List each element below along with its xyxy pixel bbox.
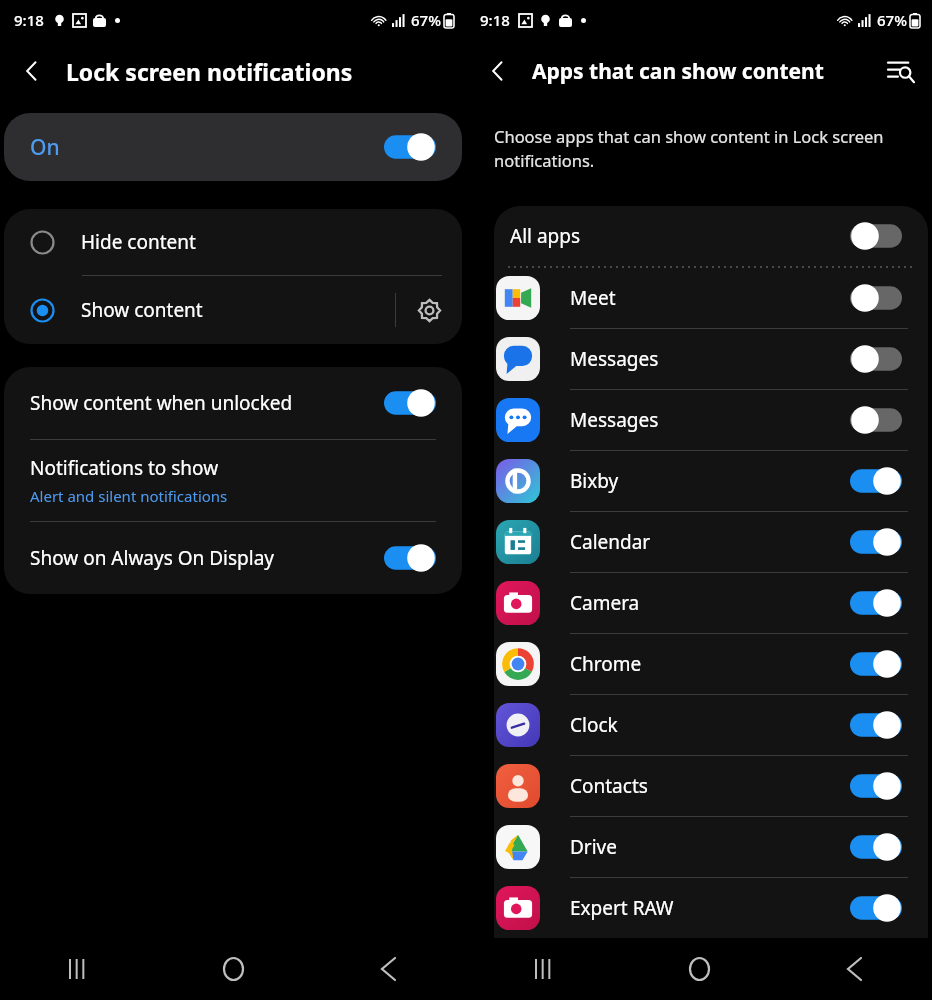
button[interactable]: Home: [156, 938, 311, 1000]
staticText: Drive: [570, 834, 850, 860]
staticText: Clock: [570, 712, 850, 738]
staticText: Apps that can show content: [532, 57, 878, 86]
staticText: 9:18: [14, 10, 44, 30]
button[interactable]: Search: [878, 48, 924, 94]
staticText: Calendar: [570, 529, 850, 555]
button[interactable]: Off: [850, 283, 902, 313]
staticText: Camera: [570, 590, 850, 616]
button[interactable]: On: [850, 832, 902, 862]
staticText: Choose apps that can show content in Loc…: [494, 125, 904, 172]
button[interactable]: On: [850, 710, 902, 740]
button[interactable]: On: [850, 527, 902, 557]
staticText: Expert RAW: [570, 895, 850, 921]
button[interactable]: Hide content: [4, 209, 462, 275]
button[interactable]: Recent apps: [466, 938, 622, 1000]
button[interactable]: Messages: [494, 329, 928, 389]
button[interactable]: Back: [777, 938, 932, 1000]
staticText: Contacts: [570, 773, 850, 799]
staticText: Lock screen notifications: [66, 56, 353, 87]
button[interactable]: On: [850, 588, 902, 618]
button[interactable]: Calendar: [494, 512, 928, 572]
button[interactable]: Meet: [494, 268, 928, 328]
staticText: Show content when unlocked: [30, 390, 384, 416]
button[interactable]: Home: [622, 938, 777, 1000]
button[interactable]: On: [850, 649, 902, 679]
button[interactable]: All apps: [494, 206, 928, 266]
button[interactable]: Off: [850, 405, 902, 435]
staticText: All apps: [510, 223, 850, 249]
button[interactable]: On: [384, 132, 436, 162]
button[interactable]: Drive: [494, 817, 928, 877]
staticText: Show content: [81, 297, 203, 323]
staticText: On: [30, 133, 60, 162]
staticText: 67%: [877, 10, 907, 30]
button[interactable]: Show content settings: [396, 276, 462, 344]
button[interactable]: Chrome: [494, 634, 928, 694]
button[interactable]: Notifications to show: [4, 440, 462, 521]
staticText: 9:18: [480, 10, 510, 30]
button[interactable]: Off: [850, 344, 902, 374]
button[interactable]: On: [384, 388, 436, 418]
button[interactable]: Back: [311, 938, 466, 1000]
staticText: Messages: [570, 407, 850, 433]
button[interactable]: On: [850, 893, 902, 923]
button[interactable]: Show on Always On Display: [4, 522, 462, 594]
button[interactable]: Expert RAW: [494, 878, 928, 938]
button[interactable]: Messages: [494, 390, 928, 450]
button[interactable]: Bixby: [494, 451, 928, 511]
button[interactable]: Recent apps: [0, 938, 156, 1000]
staticText: Show on Always On Display: [30, 545, 384, 571]
staticText: 67%: [411, 10, 441, 30]
staticText: Bixby: [570, 468, 850, 494]
button[interactable]: Show content when unlocked: [4, 367, 462, 439]
staticText: Chrome: [570, 651, 850, 677]
button[interactable]: Show content: [4, 276, 395, 344]
button[interactable]: On: [384, 543, 436, 573]
staticText: Messages: [570, 346, 850, 372]
button[interactable]: Clock: [494, 695, 928, 755]
button[interactable]: On: [850, 466, 902, 496]
staticText: Hide content: [81, 229, 196, 255]
button[interactable]: Camera: [494, 573, 928, 633]
button[interactable]: On: [850, 771, 902, 801]
staticText: Alert and silent notifications: [30, 486, 228, 506]
button[interactable]: Back: [10, 49, 54, 93]
button[interactable]: Back: [476, 49, 520, 93]
button[interactable]: Contacts: [494, 756, 928, 816]
staticText: Meet: [570, 285, 850, 311]
button[interactable]: Off: [850, 221, 902, 251]
staticText: Notifications to show: [30, 455, 219, 481]
button[interactable]: On: [4, 113, 462, 181]
